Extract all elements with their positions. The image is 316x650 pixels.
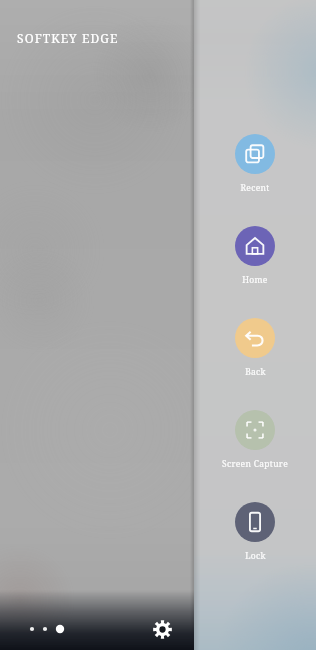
staticText: Back [245,366,266,378]
button[interactable]: Settings [148,615,176,643]
button[interactable]: Home [200,226,310,286]
staticText: Lock [245,550,266,562]
button[interactable]: Page indicator [26,622,70,636]
button[interactable]: Screen Capture [200,410,310,470]
button[interactable]: Recent [200,134,310,194]
button[interactable]: Lock [200,502,310,562]
staticText: Recent [240,182,270,194]
staticText: Screen Capture [222,458,288,470]
staticText: Home [242,274,268,286]
button[interactable]: Back [200,318,310,378]
staticText: SOFTKEY EDGE [17,30,119,46]
